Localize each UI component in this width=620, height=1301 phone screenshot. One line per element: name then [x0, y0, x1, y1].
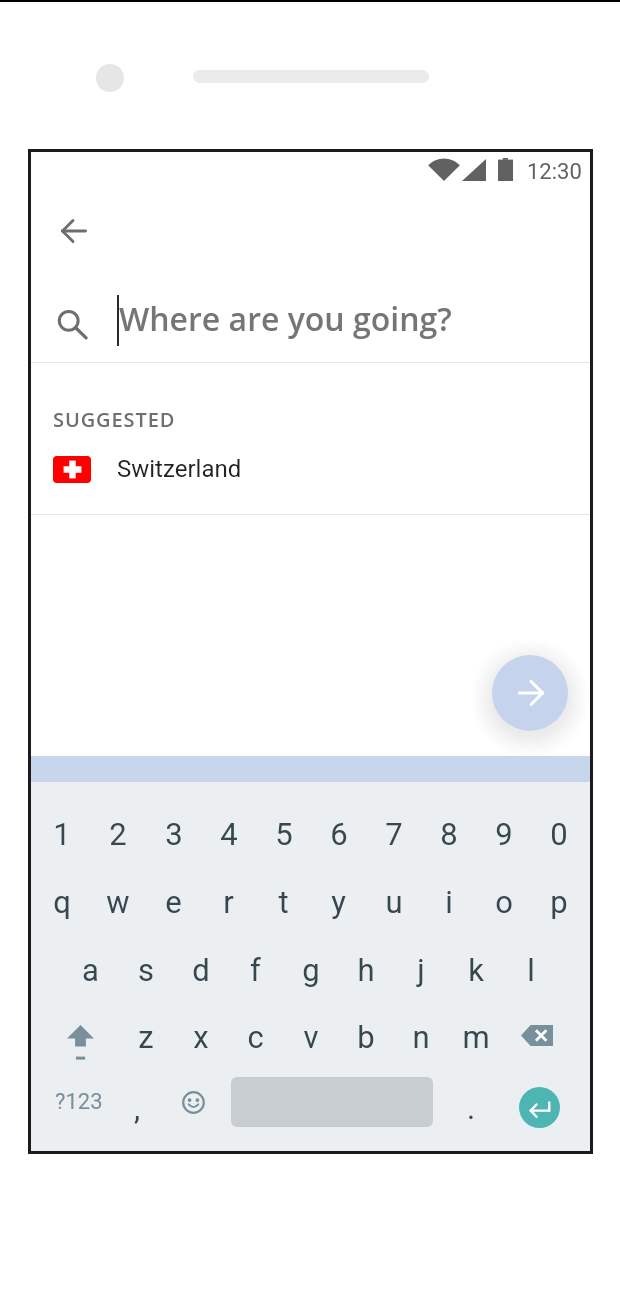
- button[interactable]: h: [338, 942, 393, 998]
- staticText: u: [385, 884, 403, 920]
- staticText: f: [250, 952, 261, 988]
- staticText: a: [82, 952, 99, 988]
- button[interactable]: Next: [492, 655, 568, 731]
- staticText: j: [417, 952, 425, 988]
- button[interactable]: g: [283, 942, 338, 998]
- staticText: 3: [165, 816, 183, 852]
- staticText: l: [527, 952, 535, 988]
- button[interactable]: 6: [311, 806, 366, 862]
- button[interactable]: m: [448, 1009, 503, 1065]
- button[interactable]: ,: [111, 1074, 161, 1130]
- staticText: 5: [275, 816, 293, 852]
- staticText: v: [303, 1019, 319, 1055]
- staticText: 1: [53, 816, 71, 852]
- button[interactable]: r: [201, 874, 256, 930]
- button[interactable]: Shift: [49, 1009, 111, 1065]
- button[interactable]: 2: [90, 806, 146, 862]
- button[interactable]: k: [448, 942, 503, 998]
- button[interactable]: f: [228, 942, 283, 998]
- button[interactable]: x: [173, 1009, 228, 1065]
- button[interactable]: a: [63, 942, 118, 998]
- button[interactable]: p: [531, 874, 586, 930]
- staticText: SUGGESTED: [53, 406, 176, 433]
- staticText: o: [495, 884, 513, 920]
- button[interactable]: c: [228, 1009, 283, 1065]
- button[interactable]: .: [442, 1074, 498, 1130]
- button[interactable]: Emoji: [165, 1074, 221, 1130]
- button[interactable]: l: [503, 942, 558, 998]
- staticText: 6: [330, 816, 348, 852]
- staticText: s: [138, 952, 154, 988]
- staticText: 0: [550, 816, 568, 852]
- button[interactable]: s: [118, 942, 173, 998]
- staticText: h: [357, 952, 375, 988]
- staticText: 2: [109, 816, 127, 852]
- staticText: 7: [385, 816, 403, 852]
- button[interactable]: i: [421, 874, 476, 930]
- button[interactable]: 0: [531, 806, 586, 862]
- staticText: Where are you going?: [119, 297, 452, 341]
- button[interactable]: d: [173, 942, 228, 998]
- button[interactable]: t: [256, 874, 311, 930]
- staticText: r: [223, 884, 234, 920]
- staticText: p: [550, 884, 568, 920]
- button[interactable]: Switzerland: [31, 443, 590, 495]
- staticText: ,: [134, 1090, 141, 1126]
- button[interactable]: q: [34, 874, 90, 930]
- staticText: c: [247, 1019, 264, 1055]
- button[interactable]: v: [283, 1009, 338, 1065]
- button[interactable]: Backspace: [506, 1009, 568, 1065]
- staticText: y: [331, 884, 346, 920]
- button[interactable]: j: [393, 942, 448, 998]
- staticText: t: [278, 884, 289, 920]
- staticText: k: [468, 952, 484, 988]
- staticText: b: [357, 1019, 375, 1055]
- button[interactable]: Where are you going?: [31, 276, 590, 362]
- button[interactable]: e: [146, 874, 201, 930]
- staticText: g: [302, 952, 320, 988]
- button[interactable]: Back: [46, 203, 102, 259]
- button[interactable]: u: [366, 874, 421, 930]
- button[interactable]: 3: [146, 806, 201, 862]
- button[interactable]: y: [311, 874, 366, 930]
- staticText: ?123: [55, 1089, 103, 1115]
- staticText: 12:30: [527, 159, 582, 185]
- button[interactable]: Enter: [519, 1087, 560, 1128]
- staticText: x: [193, 1019, 209, 1055]
- staticText: q: [53, 884, 71, 920]
- button[interactable]: 4: [201, 806, 256, 862]
- button[interactable]: o: [476, 874, 531, 930]
- staticText: w: [106, 884, 130, 920]
- staticText: Switzerland: [117, 455, 242, 483]
- staticText: e: [165, 884, 182, 920]
- button[interactable]: 1: [34, 806, 90, 862]
- staticText: n: [412, 1019, 430, 1055]
- button[interactable]: ?123: [31, 1074, 125, 1130]
- staticText: .: [467, 1090, 476, 1126]
- button[interactable]: n: [393, 1009, 448, 1065]
- staticText: 8: [440, 816, 458, 852]
- staticText: z: [138, 1019, 154, 1055]
- button[interactable]: 9: [476, 806, 531, 862]
- staticText: d: [192, 952, 210, 988]
- button[interactable]: 5: [256, 806, 311, 862]
- button[interactable]: 8: [421, 806, 476, 862]
- button[interactable]: z: [118, 1009, 173, 1065]
- button[interactable]: 7: [366, 806, 421, 862]
- staticText: 4: [220, 816, 238, 852]
- button[interactable]: w: [90, 874, 146, 930]
- button[interactable]: b: [338, 1009, 393, 1065]
- staticText: i: [445, 884, 453, 920]
- staticText: m: [462, 1019, 490, 1055]
- staticText: 9: [495, 816, 513, 852]
